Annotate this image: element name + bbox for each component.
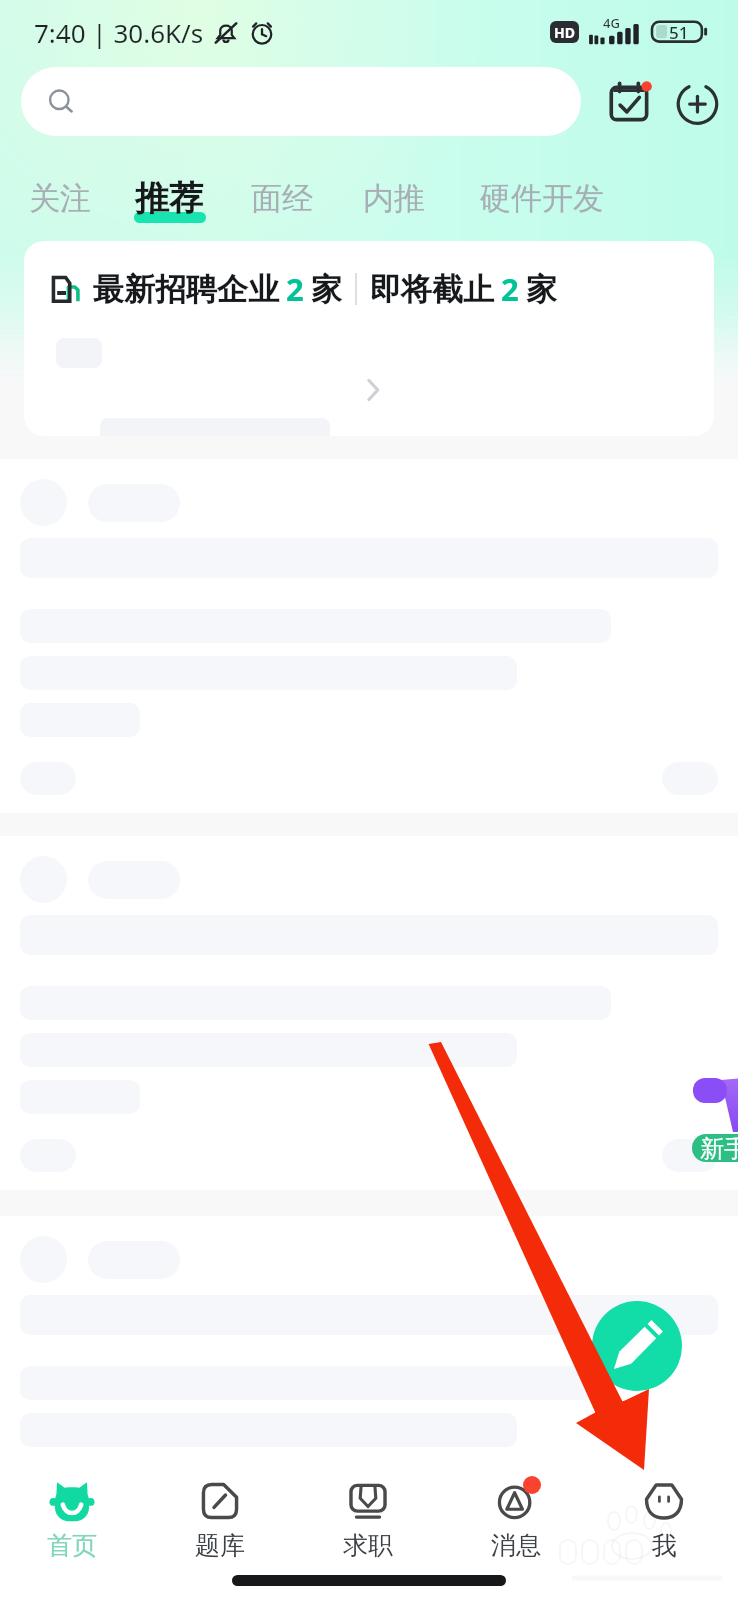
button[interactable]: 题库 [166,1476,274,1567]
staticText: 题库 [195,1530,245,1561]
button[interactable]: Search [21,67,581,136]
button[interactable]: 面经 [251,159,313,237]
staticText: 推荐 [135,177,203,220]
button[interactable]: 关注 [29,159,91,237]
staticText: 求职 [343,1530,393,1561]
button[interactable]: Write post [592,1301,682,1391]
staticText: 首页 [47,1530,97,1561]
button[interactable]: 推荐 [135,159,207,237]
staticText: 内推 [363,179,425,218]
button[interactable]: Calendar [604,76,656,128]
staticText: 新手任务 [700,1134,738,1162]
button[interactable]: 硬件开发 [480,159,604,237]
staticText: 最新招聘企业 [93,270,279,309]
staticText: 4G [603,14,620,32]
button[interactable]: 首页 [18,1476,126,1567]
staticText: HD [554,23,575,42]
staticText: 7:40 | 30.6K/s [34,15,204,50]
button[interactable]: 求职 [314,1476,422,1567]
staticText: 关注 [29,179,91,218]
staticText: 我 [652,1530,677,1561]
staticText: 面经 [251,179,313,218]
staticText: 硬件开发 [480,179,604,218]
button[interactable]: 消息 [462,1476,570,1567]
staticText: 即将截止 [370,270,494,309]
staticText: 2 [501,268,519,310]
staticText: 家 [311,270,342,309]
button[interactable]: Newbie task [691,1070,738,1180]
staticText: 51 [669,21,689,44]
staticText: 2 [286,268,304,310]
staticText: 消息 [491,1530,541,1561]
staticText: 家 [526,270,557,309]
button[interactable]: 内推 [363,159,425,237]
button[interactable]: 我 [610,1476,718,1567]
button[interactable]: Add [672,76,724,128]
button[interactable]: 最新招聘企业 [24,241,714,436]
